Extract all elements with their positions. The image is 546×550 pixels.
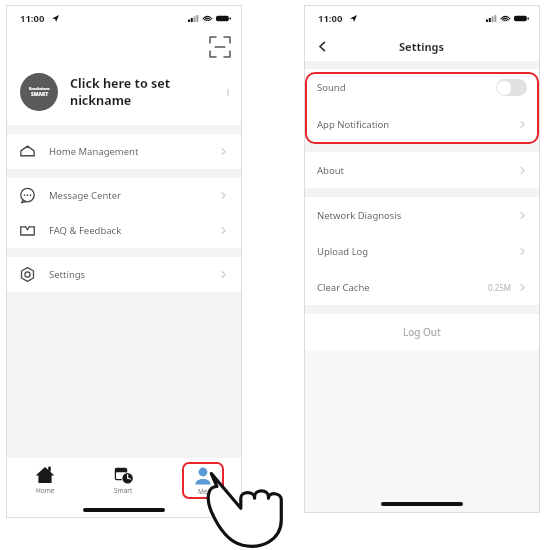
button[interactable]: Log Out [304, 314, 540, 350]
button[interactable]: FAQ & Feedback [6, 213, 242, 248]
staticText: Settings [399, 39, 445, 54]
button[interactable]: Settings [6, 257, 242, 292]
staticText: SMART [31, 91, 49, 98]
staticText: 11:00 [20, 12, 45, 25]
staticText: Home [36, 486, 55, 495]
button[interactable]: App Notification [304, 106, 540, 143]
button[interactable]: Network Diagnosis [304, 197, 540, 233]
button[interactable]: Scan QR code [210, 37, 230, 57]
staticText: Smart [114, 486, 133, 495]
staticText: 0.25M [488, 282, 512, 293]
button[interactable]: Smart [84, 458, 163, 502]
button[interactable]: About [304, 152, 540, 188]
staticText: Brookstone [29, 86, 50, 91]
staticText: App Notification [317, 118, 390, 131]
staticText: Network Diagnosis [317, 209, 402, 222]
button[interactable]: Brookstone [6, 63, 242, 121]
button[interactable]: Clear Cache [304, 269, 540, 305]
button[interactable]: Sound [304, 69, 540, 106]
staticText: Message Center [49, 189, 122, 202]
staticText: Me [198, 487, 208, 496]
staticText: Upload Log [317, 245, 369, 258]
staticText: 11:00 [318, 12, 343, 25]
button[interactable]: Message Center [6, 178, 242, 213]
staticText: About [317, 164, 344, 177]
staticText: Home Management [49, 145, 139, 158]
button[interactable]: Back [313, 37, 331, 55]
staticText: FAQ & Feedback [49, 224, 122, 237]
button[interactable]: Home [6, 458, 84, 502]
staticText: Log Out [403, 325, 441, 339]
staticText: Click here to set nickname [70, 75, 228, 109]
button[interactable]: Me [182, 462, 224, 499]
staticText: Settings [49, 268, 86, 281]
button[interactable]: Sound toggle [496, 79, 527, 96]
button[interactable]: Upload Log [304, 233, 540, 269]
staticText: Clear Cache [317, 281, 370, 294]
button[interactable]: Home Management [6, 134, 242, 169]
staticText: Sound [317, 81, 346, 94]
